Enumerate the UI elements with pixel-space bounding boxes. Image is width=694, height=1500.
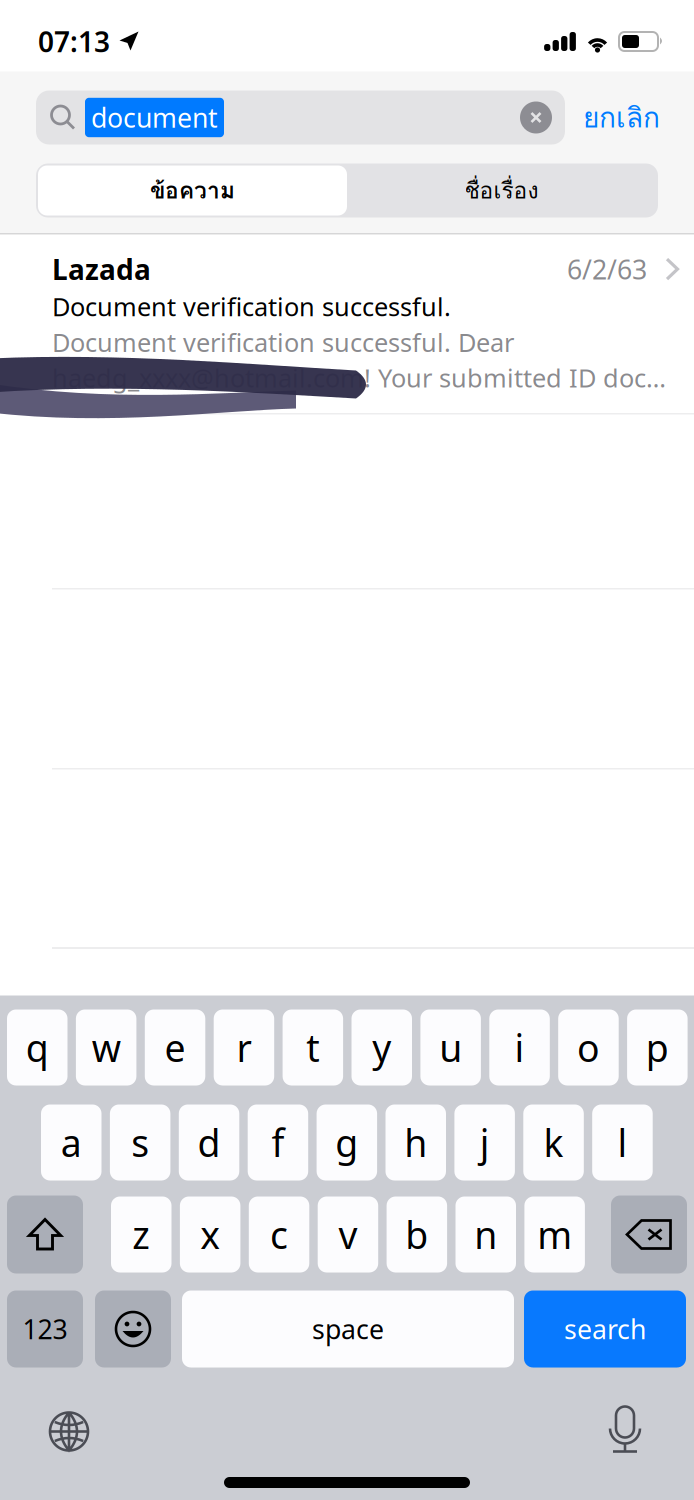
staticText: m [537,1210,572,1259]
button[interactable]: Shift [7,1195,83,1273]
staticText: Lazada [52,250,151,288]
staticText: Document verification successful. [52,290,451,323]
button[interactable]: s [110,1104,170,1180]
button[interactable]: j [454,1104,515,1180]
button[interactable]: o [558,1009,619,1085]
staticText: d [198,1118,221,1167]
staticText: ยกเลิก [583,96,660,139]
staticText: o [577,1023,600,1072]
button[interactable]: r [214,1009,274,1085]
button[interactable]: q [7,1009,67,1085]
button[interactable]: p [627,1009,688,1085]
staticText: w [92,1023,121,1072]
button[interactable]: m [524,1196,585,1272]
staticText: e [165,1023,186,1072]
staticText: p [646,1023,669,1072]
button[interactable]: k [523,1104,584,1180]
button[interactable]: d [179,1104,239,1180]
button[interactable]: b [387,1196,447,1272]
button[interactable]: ชื่อเรื่อง [347,165,656,215]
button[interactable]: n [455,1196,516,1272]
button[interactable]: f [248,1104,308,1180]
button[interactable]: w [76,1009,136,1085]
button[interactable]: y [351,1009,412,1085]
staticText: k [544,1118,564,1167]
staticText: x [200,1210,220,1259]
button[interactable]: c [249,1196,309,1272]
staticText: ชื่อเรื่อง [464,173,538,208]
staticText: j [480,1118,490,1167]
staticText: s [131,1118,149,1167]
staticText: z [132,1210,150,1259]
button[interactable]: space [182,1290,514,1367]
staticText: u [439,1023,462,1072]
button[interactable]: u [420,1009,481,1085]
staticText: y [372,1023,391,1072]
staticText: t [306,1023,319,1072]
staticText: i [515,1023,525,1072]
button[interactable]: x [180,1196,240,1272]
button[interactable]: z [111,1196,171,1272]
staticText: 07:13 [38,23,110,60]
staticText: 123 [22,1311,67,1347]
staticText: h [404,1118,427,1167]
button[interactable]: v [318,1196,378,1272]
staticText: search [564,1311,646,1347]
staticText: haedg_xxxx@hotmail.com! Your submitted I… [52,361,680,395]
staticText: Document verification successful. Dear [52,325,514,359]
staticText: c [270,1210,288,1259]
staticText: n [474,1210,497,1259]
staticText: q [26,1023,49,1072]
button[interactable]: Lazada [0,234,694,411]
button[interactable]: t [283,1009,343,1085]
button[interactable]: ข้อความ [38,165,347,215]
staticText: a [61,1118,82,1167]
button[interactable]: i [489,1009,550,1085]
button[interactable]: Dictate [583,1383,667,1475]
button[interactable]: Emoji keyboard [95,1290,171,1367]
button[interactable]: Switch keyboard [26,1388,112,1474]
staticText: f [271,1118,284,1167]
button[interactable]: g [317,1104,377,1180]
button[interactable]: e [145,1009,205,1085]
staticText: g [335,1118,358,1167]
staticText: v [338,1210,357,1259]
button[interactable]: Clear search [507,90,565,144]
staticText: l [617,1118,627,1167]
staticText: space [312,1311,384,1347]
button[interactable]: 123 [7,1290,83,1367]
button[interactable]: a [41,1104,101,1180]
staticText: document [91,100,218,135]
button[interactable]: search [524,1290,686,1367]
button[interactable]: ยกเลิก [565,90,660,144]
staticText: 6/2/63 [567,251,647,287]
button[interactable]: l [592,1104,653,1180]
button[interactable]: Delete [611,1195,687,1273]
staticText: ข้อความ [150,173,235,208]
staticText: r [236,1023,251,1072]
button[interactable]: h [385,1104,446,1180]
staticText: b [405,1210,428,1259]
